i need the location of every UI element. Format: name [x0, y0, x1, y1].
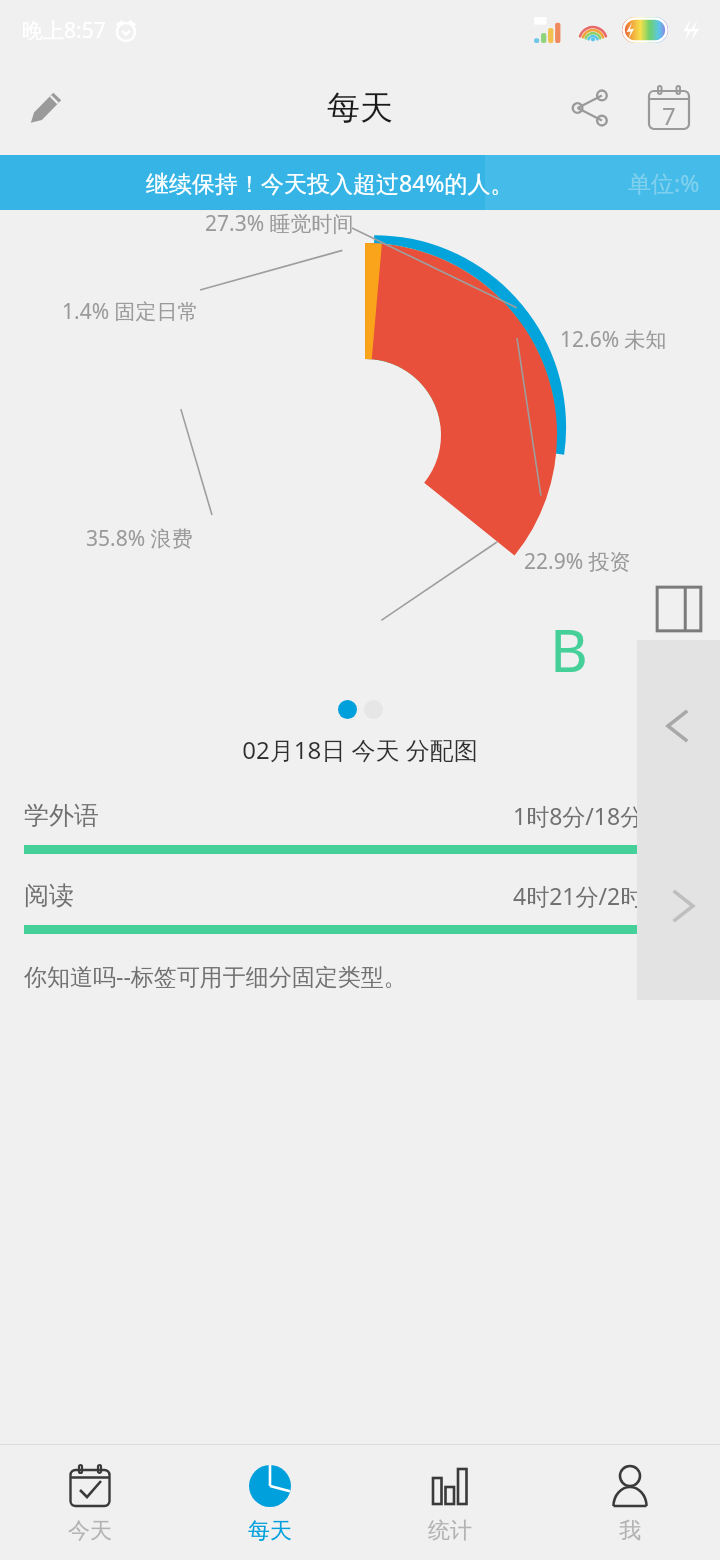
staticText: 你知道吗--标签可用于细分固定类型。 — [24, 960, 407, 991]
button[interactable]: 阅读 — [0, 880, 720, 934]
staticText: 27.3% 睡觉时间 — [205, 209, 354, 238]
button[interactable]: 我 — [540, 1445, 720, 1560]
staticText: 7 — [662, 99, 676, 132]
button[interactable]: 学外语 — [0, 800, 720, 854]
staticText: 统计 — [428, 1517, 472, 1545]
staticText: 单位:% — [628, 167, 700, 198]
staticText: B — [550, 610, 588, 689]
staticText: 晚上8:57 — [22, 16, 106, 45]
button[interactable]: 日历 — [630, 69, 708, 147]
button[interactable]: 编辑 — [10, 72, 82, 144]
staticText: 今天 — [68, 1517, 112, 1545]
button[interactable]: 今天 — [0, 1445, 180, 1560]
staticText: 1时8分/18分 完成 — [513, 800, 696, 831]
staticText: 02月18日 今天 分配图 — [0, 733, 720, 766]
staticText: 我 — [619, 1517, 641, 1545]
button[interactable]: 每天 — [180, 1445, 360, 1560]
staticText: 12.6% 未知 — [560, 325, 667, 354]
button[interactable]: 统计 — [360, 1445, 540, 1560]
staticText: 35.8% 浪费 — [86, 524, 193, 553]
staticText: 每天 — [327, 87, 393, 129]
staticText: 每天 — [248, 1517, 292, 1545]
staticText: 阅读 — [24, 880, 74, 911]
staticText: 继续保持！今天投入超过84%的人。 — [146, 167, 514, 198]
staticText: 4时21分/2时 完成 — [513, 880, 696, 911]
staticText: 学外语 — [24, 800, 99, 831]
staticText: 1.4% 固定日常 — [62, 297, 199, 326]
button[interactable]: 分享 — [552, 69, 630, 147]
staticText: 22.9% 投资 — [524, 547, 631, 576]
button[interactable]: 分屏 — [653, 583, 705, 635]
